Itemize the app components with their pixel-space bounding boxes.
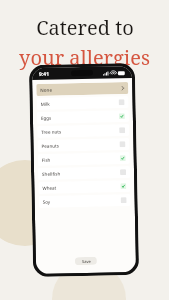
staticText: Fish: [42, 157, 51, 163]
button[interactable]: Fish: [38, 152, 130, 166]
button[interactable]: Peanuts: [37, 138, 130, 152]
staticText: Eggs: [41, 115, 52, 121]
staticText: Wheat: [42, 185, 56, 191]
button[interactable]: None: [36, 82, 128, 96]
button[interactable]: Eggs: [37, 110, 129, 124]
button[interactable]: Shellfish: [38, 166, 130, 180]
button[interactable]: Save: [75, 257, 97, 265]
staticText: Milk: [40, 101, 51, 107]
staticText: 9:41: [39, 71, 49, 78]
staticText: Peanuts: [41, 142, 59, 149]
staticText: your allergies: [19, 44, 150, 71]
staticText: Catered to: [36, 14, 134, 41]
staticText: Save: [82, 259, 91, 264]
button[interactable]: Milk: [36, 96, 129, 110]
staticText: Shellfish: [42, 170, 61, 177]
staticText: Tree nuts: [41, 128, 62, 135]
button[interactable]: Soy: [38, 194, 131, 208]
staticText: Soy: [43, 199, 51, 205]
staticText: None: [40, 87, 52, 93]
button[interactable]: Tree nuts: [37, 124, 129, 138]
button[interactable]: Wheat: [38, 180, 130, 194]
